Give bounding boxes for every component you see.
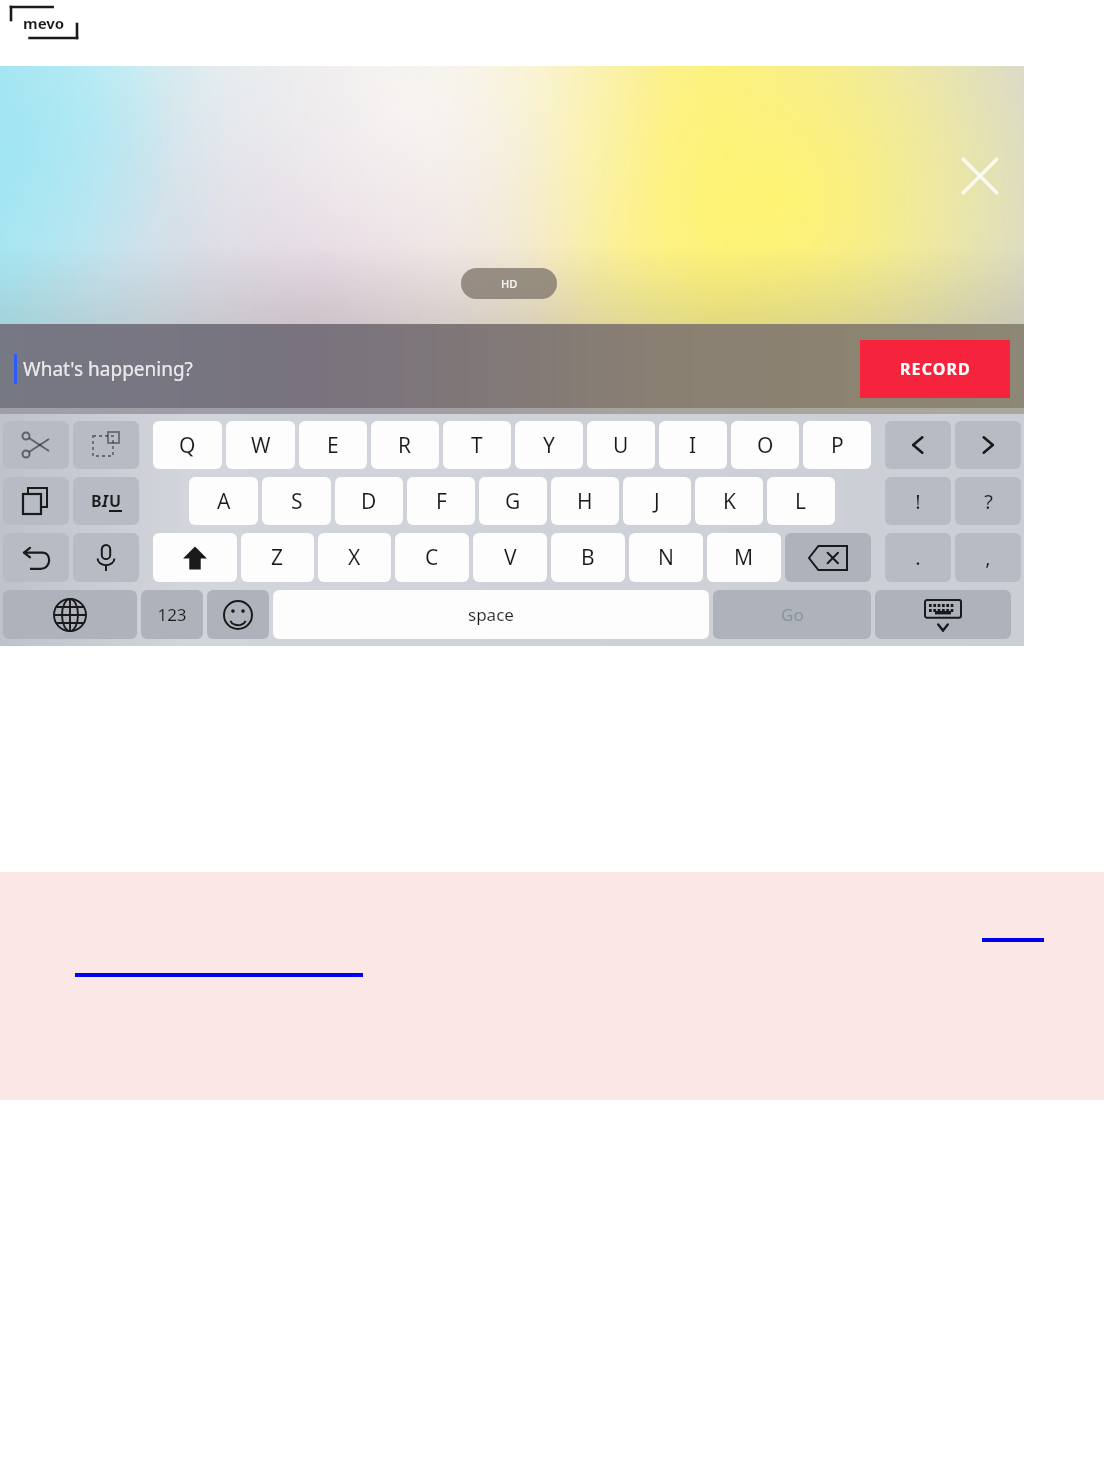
button[interactable]: O — [731, 421, 799, 469]
staticText: L — [795, 487, 807, 516]
button[interactable]: T — [443, 421, 511, 469]
staticText: P — [831, 431, 844, 460]
staticText: mevo — [23, 13, 65, 33]
button[interactable]: Go — [713, 590, 871, 639]
button[interactable]: key — [3, 421, 69, 469]
button[interactable]: Emoji — [207, 590, 269, 639]
button[interactable]: Z — [241, 533, 314, 582]
button[interactable]: Q — [153, 421, 222, 469]
button[interactable]: S — [262, 477, 331, 525]
staticText: V — [504, 543, 517, 572]
button[interactable]: key — [885, 477, 951, 525]
button[interactable]: H — [551, 477, 619, 525]
button[interactable]: J — [623, 477, 691, 525]
staticText: U — [109, 490, 122, 512]
staticText: S — [291, 487, 303, 516]
staticText: , — [985, 544, 991, 571]
button[interactable]: Close — [952, 148, 1008, 204]
button[interactable]: G — [479, 477, 547, 525]
staticText: D — [361, 487, 377, 516]
button[interactable]: A — [189, 477, 258, 525]
button[interactable]: key — [955, 533, 1021, 582]
staticText: . — [915, 544, 921, 571]
button[interactable]: key — [73, 533, 139, 582]
staticText: HD — [501, 276, 518, 291]
staticText: R — [398, 431, 412, 460]
button[interactable]: C — [395, 533, 469, 582]
staticText: F — [436, 487, 447, 516]
button[interactable]: B — [551, 533, 625, 582]
staticText: U — [613, 431, 629, 460]
staticText: J — [654, 487, 660, 516]
button[interactable]: F — [407, 477, 475, 525]
button[interactable]: Y — [515, 421, 583, 469]
staticText: O — [757, 431, 774, 460]
button[interactable]: I — [659, 421, 727, 469]
staticText: B — [91, 490, 102, 512]
staticText: Y — [543, 431, 555, 460]
staticText: space — [468, 603, 514, 626]
staticText: B — [581, 543, 595, 572]
button[interactable]: M — [707, 533, 781, 582]
button[interactable]: key — [885, 421, 951, 469]
staticText: C — [425, 543, 439, 572]
staticText: What's happening? — [23, 356, 193, 382]
button[interactable]: P — [803, 421, 871, 469]
button[interactable]: X — [318, 533, 391, 582]
button[interactable]: key — [955, 477, 1021, 525]
button[interactable]: W — [226, 421, 295, 469]
button[interactable]: R — [371, 421, 439, 469]
staticText: K — [723, 487, 736, 516]
button[interactable]: key — [955, 421, 1021, 469]
staticText: Go — [781, 603, 804, 626]
button[interactable]: mevo logo — [8, 4, 80, 44]
button[interactable]: K — [695, 477, 763, 525]
button[interactable]: Backspace — [785, 533, 871, 582]
staticText: N — [658, 543, 674, 572]
staticText: A — [217, 487, 231, 516]
button[interactable]: key — [73, 421, 139, 469]
staticText: Q — [179, 431, 196, 460]
staticText: I — [102, 490, 109, 512]
button[interactable]: Hide keyboard — [875, 590, 1011, 639]
staticText: ! — [915, 488, 921, 515]
button[interactable]: key — [885, 533, 951, 582]
staticText: RECORD — [900, 358, 971, 380]
button[interactable]: N — [629, 533, 703, 582]
staticText: M — [734, 543, 754, 572]
staticText: Z — [271, 543, 284, 572]
button[interactable]: key — [3, 533, 69, 582]
button[interactable]: HD — [461, 268, 557, 299]
button[interactable]: E — [299, 421, 367, 469]
button[interactable]: V — [473, 533, 547, 582]
staticText: E — [327, 431, 339, 460]
button[interactable]: What's happening? — [14, 324, 894, 414]
staticText: ? — [984, 488, 993, 515]
staticText: I — [689, 431, 697, 460]
button[interactable]: Numbers — [141, 590, 203, 639]
staticText: X — [348, 543, 361, 572]
button[interactable]: key — [73, 477, 139, 525]
button[interactable]: key — [3, 477, 69, 525]
button[interactable]: RECORD — [860, 340, 1010, 398]
staticText: W — [251, 431, 271, 460]
staticText: 123 — [157, 603, 187, 626]
button[interactable]: L — [767, 477, 835, 525]
staticText: G — [505, 487, 521, 516]
staticText: T — [471, 431, 483, 460]
staticText: H — [577, 487, 593, 516]
button[interactable]: space — [273, 590, 709, 639]
button[interactable]: Shift — [153, 533, 237, 582]
button[interactable]: U — [587, 421, 655, 469]
button[interactable]: Switch language — [3, 590, 137, 639]
button[interactable]: D — [335, 477, 403, 525]
